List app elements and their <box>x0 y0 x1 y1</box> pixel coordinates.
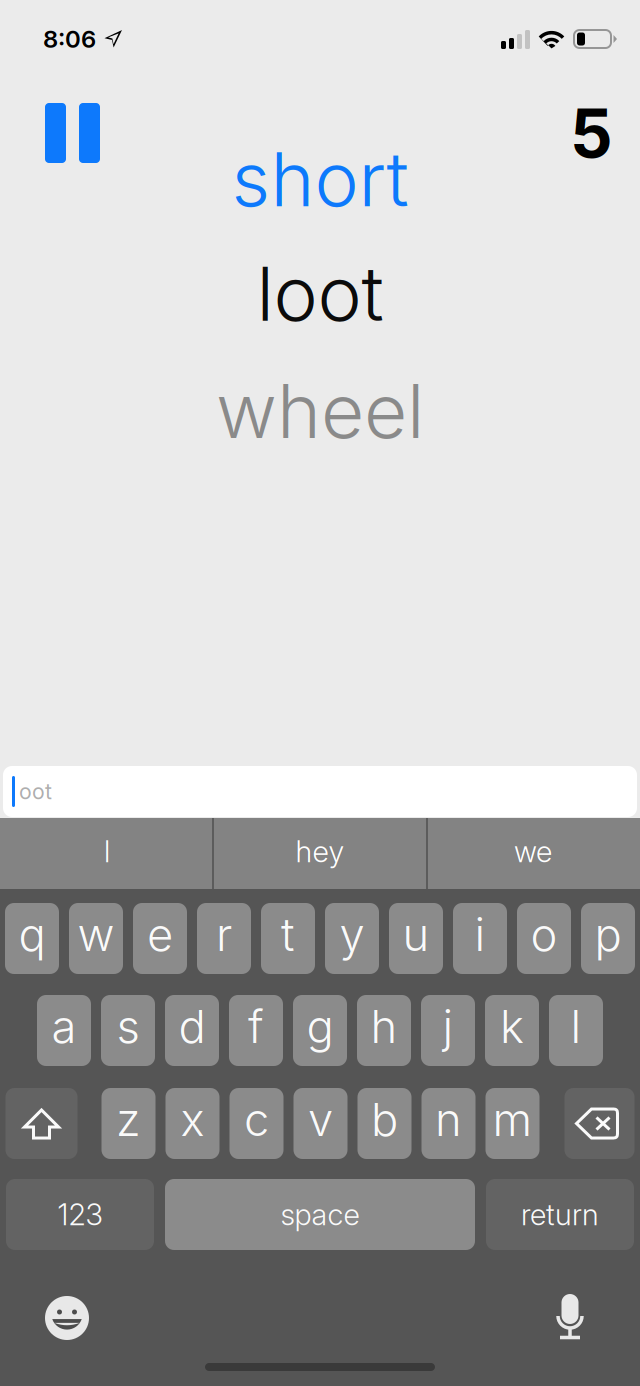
staticText: a <box>51 999 76 1054</box>
staticText: r <box>216 907 232 962</box>
button[interactable]: w <box>69 903 123 974</box>
staticText: f <box>248 999 264 1054</box>
button[interactable]: x <box>165 1088 219 1159</box>
button[interactable]: a <box>37 995 91 1066</box>
button[interactable]: hey <box>213 818 426 889</box>
staticText: q <box>18 907 45 962</box>
button[interactable]: Emoji keyboard <box>44 1295 90 1341</box>
staticText: v <box>308 1092 333 1147</box>
staticText: k <box>500 999 524 1054</box>
staticText: b <box>371 1092 398 1147</box>
staticText: i <box>474 907 485 962</box>
staticText: t <box>281 907 295 962</box>
button[interactable]: return <box>486 1179 634 1250</box>
button[interactable]: z <box>101 1088 155 1159</box>
button[interactable]: u <box>389 903 443 974</box>
staticText: s <box>116 999 139 1054</box>
staticText: e <box>147 907 173 962</box>
staticText: c <box>244 1092 269 1147</box>
staticText: n <box>435 1092 462 1147</box>
button[interactable]: s <box>101 995 155 1066</box>
button[interactable]: c <box>229 1088 283 1159</box>
button[interactable]: space <box>165 1179 475 1250</box>
staticText: 8:06 <box>43 24 96 53</box>
button[interactable]: 123 <box>6 1179 154 1250</box>
button[interactable]: j <box>421 995 475 1066</box>
button[interactable]: v <box>293 1088 347 1159</box>
button[interactable]: h <box>357 995 411 1066</box>
staticText: space <box>280 1197 359 1232</box>
staticText: l <box>104 834 110 869</box>
staticText: g <box>306 999 333 1054</box>
staticText: z <box>116 1092 141 1147</box>
staticText: 123 <box>57 1197 102 1232</box>
staticText: y <box>339 907 364 962</box>
button[interactable]: Dictation <box>553 1294 587 1342</box>
button[interactable]: q <box>5 903 59 974</box>
button[interactable]: i <box>453 903 507 974</box>
staticText: wheel <box>216 366 424 456</box>
button[interactable]: p <box>581 903 635 974</box>
staticText: o <box>530 907 557 962</box>
staticText: short <box>231 134 408 224</box>
button[interactable]: t <box>261 903 315 974</box>
staticText: p <box>594 907 621 962</box>
button[interactable]: g <box>293 995 347 1066</box>
button[interactable]: we <box>426 818 639 889</box>
staticText: l <box>570 999 581 1054</box>
staticText: 5 <box>570 93 613 174</box>
button[interactable]: m <box>485 1088 539 1159</box>
staticText: x <box>180 1092 204 1147</box>
button[interactable]: k <box>485 995 539 1066</box>
button[interactable]: l <box>0 818 213 889</box>
button[interactable]: o <box>517 903 571 974</box>
button[interactable]: oot <box>3 766 637 817</box>
button[interactable]: r <box>197 903 251 974</box>
staticText: j <box>442 999 453 1054</box>
button[interactable]: e <box>133 903 187 974</box>
button[interactable]: Pause <box>45 103 100 163</box>
staticText: we <box>514 834 552 869</box>
button[interactable]: n <box>421 1088 475 1159</box>
button[interactable]: Delete <box>564 1088 634 1159</box>
staticText: m <box>492 1092 532 1147</box>
staticText: oot <box>19 779 52 804</box>
staticText: d <box>178 999 205 1054</box>
button[interactable]: l <box>549 995 603 1066</box>
button[interactable]: b <box>357 1088 411 1159</box>
staticText: u <box>402 907 429 962</box>
staticText: loot <box>256 248 383 339</box>
button[interactable]: Shift <box>5 1088 77 1159</box>
button[interactable]: y <box>325 903 379 974</box>
staticText: hey <box>295 834 344 869</box>
staticText: return <box>521 1197 599 1232</box>
button[interactable]: f <box>229 995 283 1066</box>
button[interactable]: d <box>165 995 219 1066</box>
staticText: h <box>370 999 397 1054</box>
staticText: w <box>77 907 114 962</box>
